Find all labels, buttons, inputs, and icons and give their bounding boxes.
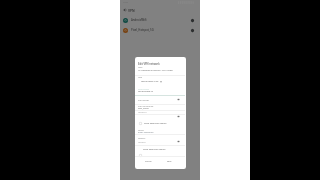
staticText: Enter username xyxy=(138,131,154,134)
staticText: IKEv2/IPSec PSK xyxy=(141,80,159,83)
staticText: user_name xyxy=(138,107,149,110)
button[interactable]: Show advanced options xyxy=(139,121,167,125)
staticText: Show advanced options xyxy=(143,148,166,151)
staticText: Password xyxy=(138,137,146,139)
staticText: AndroidWifi xyxy=(131,18,189,22)
button[interactable]: Cancel xyxy=(144,159,153,164)
button[interactable]: AndroidWifi xyxy=(120,15,200,25)
button[interactable]: IKEv2/IPSec PSK xyxy=(141,80,162,83)
button[interactable]: Network settings xyxy=(189,27,196,34)
button[interactable]: Pixel_Hotspot_5G xyxy=(120,25,200,35)
staticText: ••••••••••• xyxy=(138,111,147,114)
staticText: •••••••••• xyxy=(138,141,146,144)
button[interactable]: Network settings xyxy=(189,17,196,24)
staticText: Show advanced options xyxy=(144,122,167,125)
staticText: Type xyxy=(138,76,142,78)
button[interactable]: Show password xyxy=(176,97,181,102)
staticText: IPSec pre-shared key xyxy=(138,105,154,107)
button[interactable]: Save xyxy=(166,159,173,164)
staticText: All Networks & Internet - VPN Profile xyxy=(138,69,173,72)
button[interactable]: Show password xyxy=(176,114,181,119)
staticText: vpn.example.co xyxy=(138,90,153,93)
staticText: Identity xyxy=(138,129,144,131)
staticText: Name xyxy=(138,66,143,68)
staticText: 10:25 xyxy=(123,1,129,4)
staticText: VPN xyxy=(128,8,135,13)
staticText: Edit VPN network xyxy=(138,62,160,66)
staticText: Pixel_Hotspot_5G xyxy=(131,28,189,32)
button[interactable]: Show password xyxy=(176,139,181,144)
button[interactable]: Back xyxy=(121,6,128,13)
staticText: IPSec identifier xyxy=(138,99,150,101)
staticText: Save xyxy=(167,160,172,163)
button[interactable] xyxy=(139,153,142,157)
staticText: Cancel xyxy=(145,160,152,163)
staticText: Server address xyxy=(138,88,150,90)
